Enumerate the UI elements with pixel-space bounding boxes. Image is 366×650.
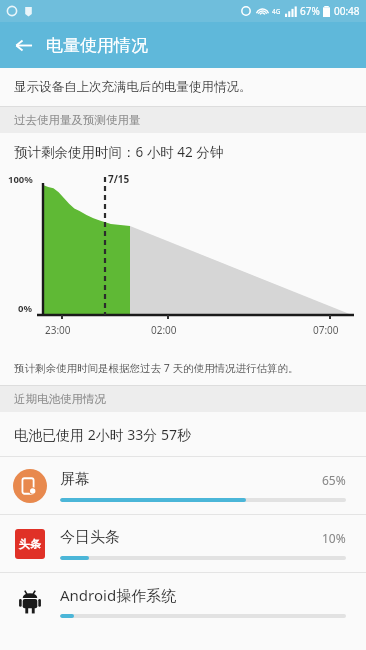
staticText: 屏幕	[60, 470, 322, 489]
button[interactable]: 电池已使用 2小时 33分 57秒	[0, 412, 366, 456]
button[interactable]: 头条	[0, 515, 366, 572]
staticText: 0%	[18, 302, 33, 315]
staticText: 近期电池使用情况	[14, 392, 106, 406]
button[interactable]: 屏幕	[0, 457, 366, 514]
staticText: 过去使用量及预测使用量	[14, 113, 141, 127]
staticText: 02:00	[151, 323, 177, 337]
staticText: 67%	[300, 4, 320, 18]
staticText: 显示设备自上次充满电后的电量使用情况。	[14, 79, 252, 95]
staticText: 10%	[322, 530, 346, 546]
button[interactable]: Android操作系统	[0, 573, 366, 630]
button[interactable]: Back	[0, 22, 46, 68]
staticText: Android操作系统	[60, 585, 346, 605]
staticText: 23:00	[45, 323, 71, 337]
staticText: 7/15	[108, 172, 130, 186]
staticText: 65%	[322, 472, 346, 488]
staticText: 00:48	[334, 4, 360, 18]
staticText: 头条	[19, 537, 41, 551]
staticText: 预计剩余使用时间是根据您过去 7 天的使用情况进行估算的。	[14, 361, 299, 375]
staticText: 预计剩余使用时间：6 小时 42 分钟	[14, 143, 224, 161]
staticText: 电量使用情况	[46, 35, 148, 56]
staticText: 4G	[272, 7, 281, 16]
staticText: 今日头条	[60, 528, 322, 547]
staticText: 07:00	[313, 323, 339, 337]
staticText: 100%	[8, 173, 33, 186]
staticText: 电池已使用 2小时 33分 57秒	[14, 425, 191, 444]
